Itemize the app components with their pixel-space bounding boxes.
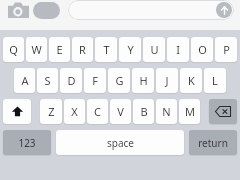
staticText: B: [140, 104, 148, 119]
button[interactable]: Backspace: [209, 99, 237, 124]
staticText: D: [67, 73, 76, 88]
staticText: M: [185, 104, 195, 119]
staticText: O: [198, 42, 207, 57]
staticText: T: [103, 42, 110, 57]
staticText: P: [223, 42, 230, 57]
staticText: A: [21, 73, 29, 88]
button[interactable]: W: [26, 37, 47, 62]
button[interactable]: G: [108, 68, 130, 93]
button[interactable]: B: [133, 99, 154, 124]
staticText: E: [56, 42, 63, 57]
staticText: H: [139, 73, 148, 88]
button[interactable]: J: [156, 68, 178, 93]
staticText: C: [94, 104, 101, 119]
button[interactable]: 123: [3, 130, 51, 155]
button[interactable]: More options: [33, 2, 60, 19]
staticText: V: [117, 104, 124, 119]
button[interactable]: Send: [68, 0, 234, 20]
button[interactable]: return: [189, 130, 237, 155]
staticText: R: [79, 42, 86, 57]
button[interactable]: C: [87, 99, 108, 124]
button[interactable]: U: [143, 37, 165, 62]
button[interactable]: Y: [119, 37, 141, 62]
button[interactable]: X: [64, 99, 85, 124]
button[interactable]: S: [37, 68, 58, 93]
button[interactable]: F: [84, 68, 106, 93]
staticText: K: [188, 73, 195, 88]
button[interactable]: E: [49, 37, 70, 62]
button[interactable]: Send: [216, 2, 232, 18]
button[interactable]: T: [95, 37, 117, 62]
button[interactable]: N: [156, 99, 177, 124]
staticText: F: [92, 73, 98, 88]
button[interactable]: I: [167, 37, 189, 62]
staticText: return: [198, 136, 228, 150]
staticText: space: [107, 136, 134, 150]
button[interactable]: V: [110, 99, 131, 124]
button[interactable]: space: [56, 130, 184, 155]
button[interactable]: L: [204, 68, 226, 93]
button[interactable]: O: [191, 37, 213, 62]
staticText: Z: [48, 104, 55, 119]
button[interactable]: Shift: [3, 99, 31, 124]
staticText: S: [44, 73, 51, 88]
button[interactable]: Q: [3, 37, 24, 62]
button[interactable]: M: [179, 99, 200, 124]
staticText: U: [150, 42, 159, 57]
staticText: Y: [127, 42, 134, 57]
staticText: I: [176, 42, 180, 57]
staticText: X: [71, 104, 78, 119]
staticText: L: [212, 73, 218, 88]
button[interactable]: K: [180, 68, 202, 93]
button[interactable]: P: [215, 37, 237, 62]
staticText: 123: [18, 136, 36, 150]
button[interactable]: R: [72, 37, 93, 62]
button[interactable]: Z: [40, 99, 62, 124]
button[interactable]: A: [14, 68, 35, 93]
staticText: W: [31, 42, 42, 57]
button[interactable]: Camera: [6, 0, 30, 20]
staticText: Q: [9, 42, 18, 57]
staticText: G: [115, 73, 124, 88]
staticText: N: [162, 104, 171, 119]
staticText: J: [165, 73, 169, 88]
button[interactable]: H: [132, 68, 154, 93]
button[interactable]: D: [60, 68, 82, 93]
